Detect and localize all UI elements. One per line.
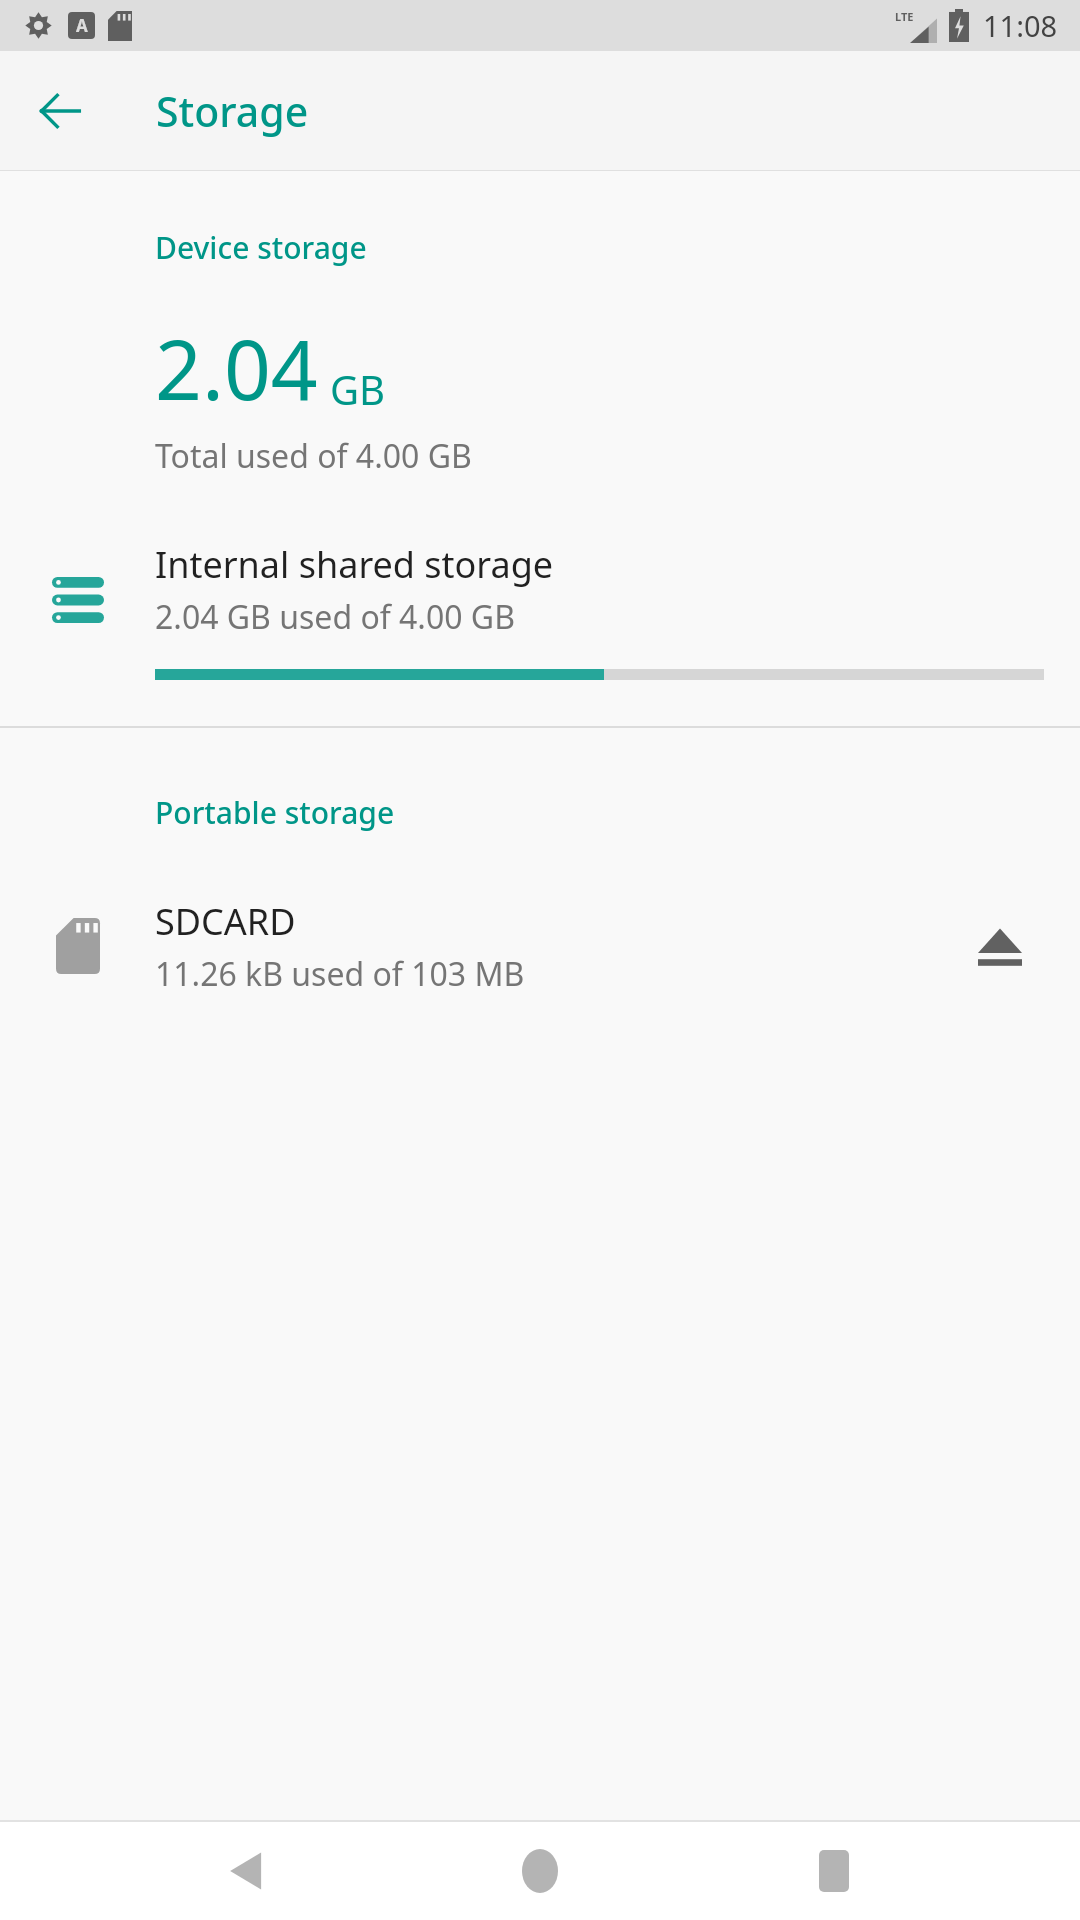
staticText: Storage [156,83,309,139]
staticText: 2.04 GB used of 4.00 GB [155,595,515,639]
staticText: A [76,14,88,37]
staticText: LTE [895,9,914,24]
staticText: SDCARD [155,897,296,946]
staticText: 11:08 [983,6,1058,45]
staticText: 2.04 [155,312,318,424]
button[interactable]: Back [198,1823,294,1919]
button[interactable]: Recents [786,1823,882,1919]
button[interactable]: SDCARD [0,891,1080,1001]
staticText: Internal shared storage [155,540,554,589]
button[interactable]: Home [492,1823,588,1919]
staticText: Portable storage [155,792,395,833]
button[interactable]: Back [22,73,98,149]
staticText: GB [330,362,386,416]
staticText: Total used of 4.00 GB [155,434,472,478]
staticText: Device storage [155,227,367,268]
staticText: 11.26 kB used of 103 MB [155,952,525,996]
button[interactable]: Internal shared storage [0,540,1080,680]
button[interactable]: Eject [960,906,1040,986]
